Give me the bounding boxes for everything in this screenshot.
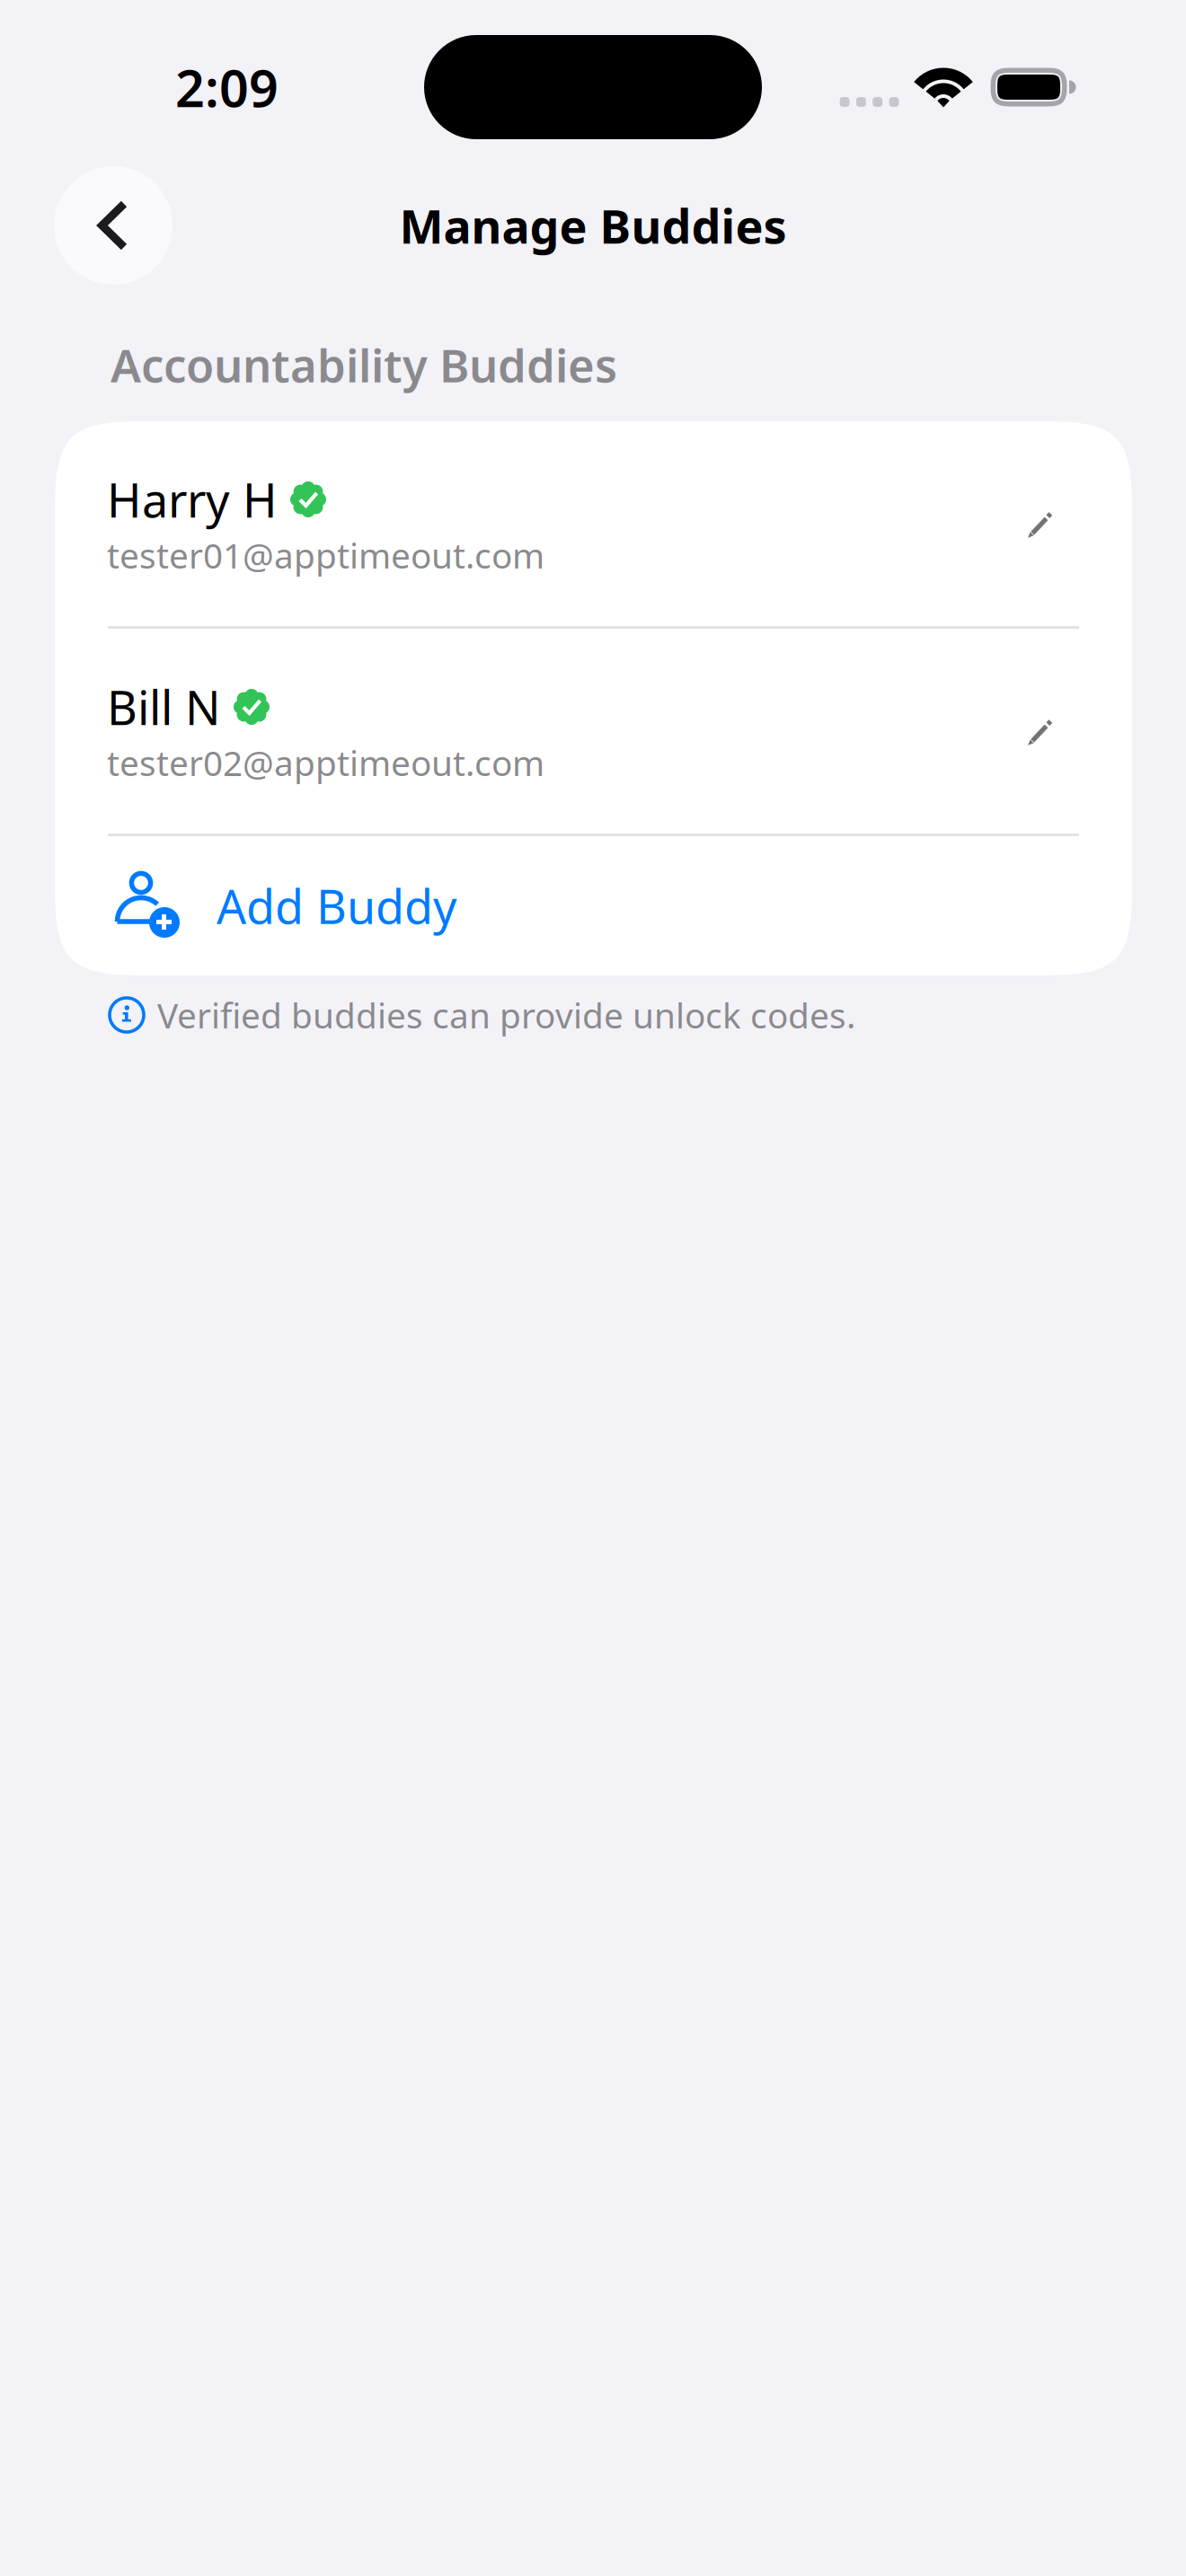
button[interactable]: Back — [54, 166, 173, 285]
staticText: tester01@apptimeout.com — [107, 532, 544, 578]
staticText: Bill N — [107, 676, 221, 738]
staticText: Manage Buddies — [399, 194, 787, 257]
staticText: Verified buddies can provide unlock code… — [157, 992, 855, 1038]
staticText: Add Buddy — [217, 875, 457, 937]
staticText: 2:09 — [175, 53, 279, 121]
button[interactable]: Add Buddy — [55, 836, 1132, 975]
button[interactable]: Harry H — [55, 421, 1132, 626]
staticText: tester02@apptimeout.com — [107, 739, 544, 786]
button[interactable]: Bill N — [55, 629, 1132, 834]
staticText: Accountability Buddies — [111, 334, 617, 395]
staticText: Harry H — [107, 468, 278, 530]
